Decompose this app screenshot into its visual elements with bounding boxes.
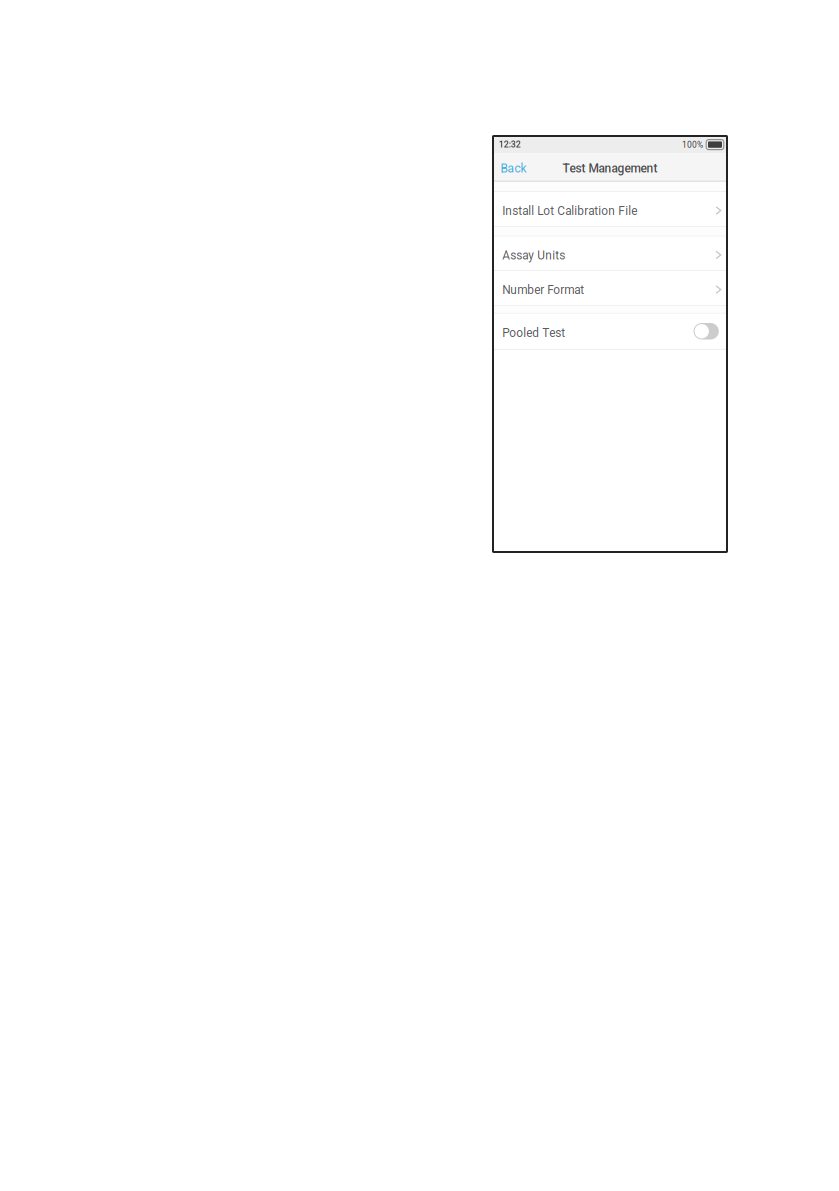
button[interactable]: Number Format — [493, 271, 727, 305]
staticText: Assay Units — [502, 248, 565, 262]
button[interactable]: Install Lot Calibration File — [493, 192, 727, 226]
staticText: Install Lot Calibration File — [502, 204, 637, 218]
staticText: Test Management — [562, 161, 657, 175]
staticText: Back — [501, 161, 527, 175]
button[interactable]: Assay Units — [493, 236, 727, 270]
staticText: 12:32 — [499, 139, 521, 150]
staticText: Pooled Test — [502, 326, 565, 340]
staticText: Number Format — [502, 283, 584, 297]
button[interactable]: Back — [493, 153, 539, 181]
button[interactable]: Pooled Test — [693, 323, 719, 339]
staticText: 100% — [682, 140, 703, 150]
